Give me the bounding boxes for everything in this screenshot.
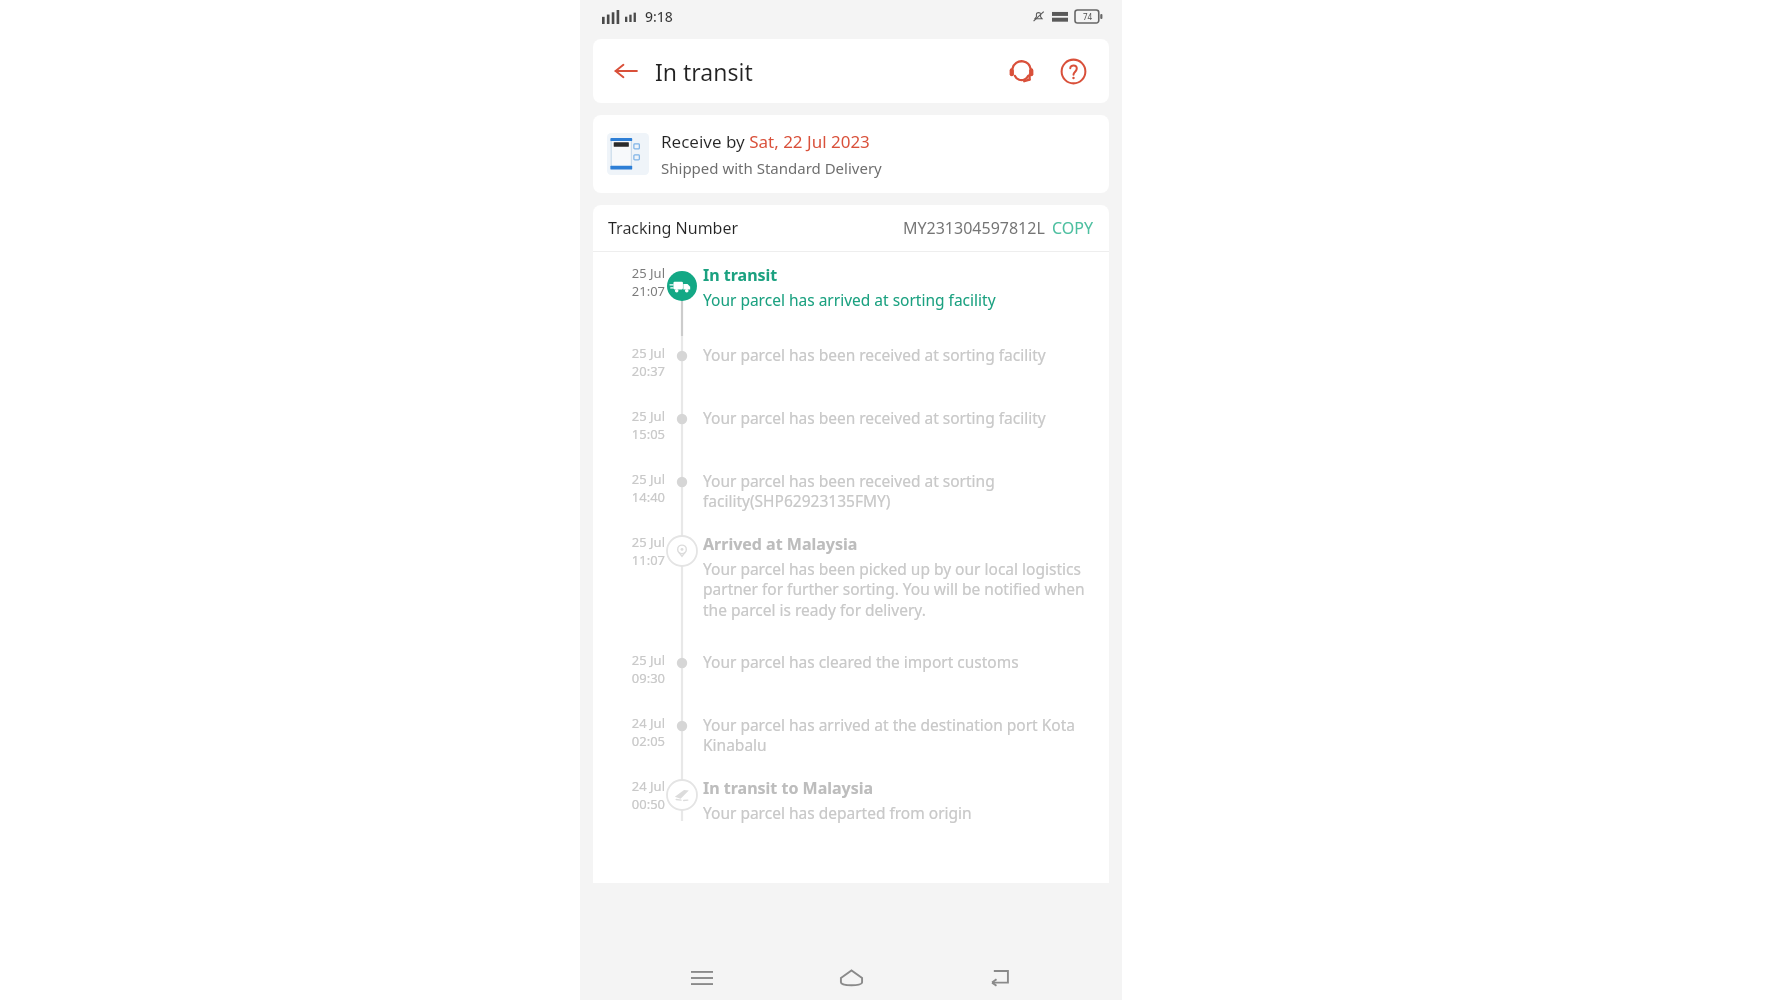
staticText: Your parcel has arrived at the destinati… [703,714,1087,756]
staticText: Your parcel has been picked up by our lo… [703,558,1087,621]
staticText: 25 Jul [631,264,665,282]
staticText: In transit [655,56,753,87]
staticText: COPY [1052,217,1094,239]
staticText: 09:30 [631,669,665,687]
button[interactable]: Back [973,955,1027,1000]
staticText: 25 Jul [631,344,665,362]
staticText: 25 Jul [631,533,665,551]
staticText: Arrived at Malaysia [703,533,858,555]
staticText: Shipped with Standard Delivery [661,158,882,178]
staticText: In transit [703,264,778,286]
staticText: 25 Jul [631,470,665,488]
button[interactable]: Recent apps [675,955,729,1000]
button[interactable]: Home [824,955,878,1000]
staticText: 02:05 [631,732,665,750]
staticText: 00:50 [631,795,665,813]
staticText: Your parcel has arrived at sorting facil… [703,289,996,310]
button[interactable]: Receive by Sat, 22 Jul 2023 [593,115,1109,193]
staticText: Tracking Number [608,217,739,239]
staticText: 24 Jul [631,777,665,795]
staticText: Receive by Sat, 22 Jul 2023 [661,130,870,153]
staticText: 21:07 [631,282,665,300]
staticText: 15:05 [631,425,665,443]
button[interactable]: Back [607,52,645,90]
staticText: Your parcel has cleared the import custo… [703,651,1019,672]
staticText: 24 Jul [631,714,665,732]
staticText: 14:40 [631,488,665,506]
button[interactable]: Help [1053,51,1093,91]
staticText: 9:18 [645,7,673,26]
staticText: Your parcel has departed from origin [703,802,972,823]
staticText: 25 Jul [631,407,665,425]
button[interactable]: Customer service [1001,51,1041,91]
staticText: 11:07 [631,551,665,569]
button[interactable]: COPY [1052,217,1094,239]
staticText: MY231304597812L [903,217,1045,239]
staticText: Your parcel has been received at sorting… [703,407,1046,428]
staticText: 25 Jul [631,651,665,669]
staticText: 74 [1083,11,1093,22]
staticText: Your parcel has been received at sorting… [703,344,1046,365]
staticText: 20:37 [631,362,665,380]
staticText: Your parcel has been received at sorting… [703,470,1087,512]
staticText: In transit to Malaysia [703,777,874,799]
